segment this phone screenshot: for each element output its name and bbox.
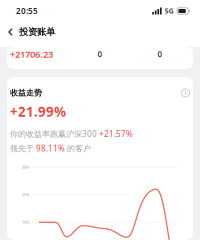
staticText: 5G [165,7,174,15]
staticText: +21.57% [99,128,133,139]
staticText: 10% [22,220,29,225]
staticText: 你的收益率跑赢沪深300 [10,128,99,139]
staticText: 0 [97,49,102,59]
staticText: 的客户 [65,144,91,153]
staticText: 投资账单 [19,26,55,38]
staticText: 0 [157,49,162,59]
staticText: 收益走势 [10,88,42,98]
staticText: 30% [22,165,29,170]
button[interactable]: 返回 [0,22,19,42]
staticText: 98.11% [36,143,65,154]
staticText: 领先于 [10,144,36,153]
button[interactable]: 收益说明 [181,88,190,97]
staticText: +21.99% [10,103,66,120]
staticText: 20:55 [16,6,38,16]
staticText: +21706.23 [10,48,53,60]
staticText: 20% [22,192,29,197]
